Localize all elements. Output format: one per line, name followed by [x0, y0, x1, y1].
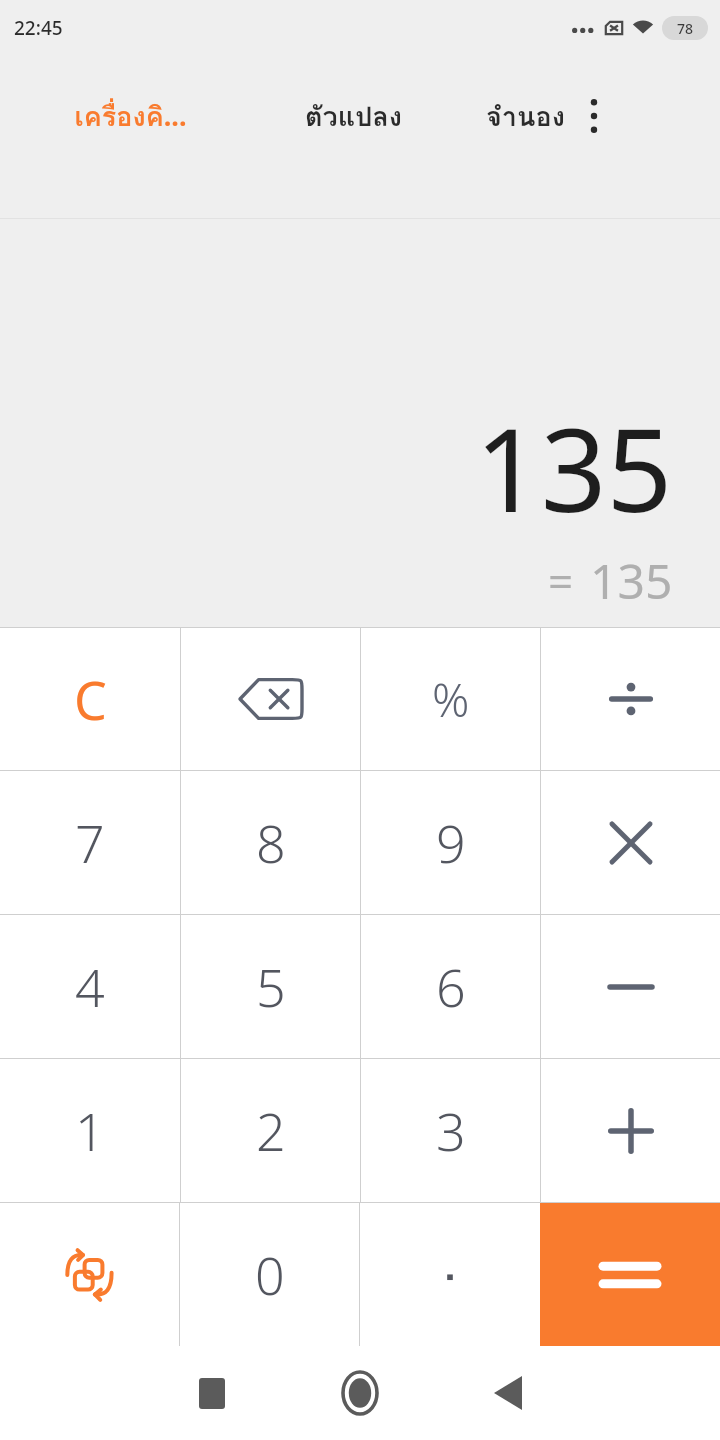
staticText: % [432, 668, 470, 731]
other: Divide [608, 676, 654, 722]
button[interactable]: Backspace [181, 628, 360, 770]
staticText: 0 [255, 1239, 285, 1310]
button[interactable]: Home [310, 1346, 410, 1440]
button[interactable]: 2 [181, 1059, 360, 1202]
button[interactable]: Multiply [541, 771, 720, 914]
staticText: 2 [256, 1095, 286, 1166]
staticText: 8 [256, 807, 286, 878]
button[interactable]: Recent apps [162, 1346, 262, 1440]
staticText: = [548, 551, 574, 611]
button[interactable]: เครื่องคิ... [0, 84, 260, 148]
staticText: 135 [590, 548, 673, 613]
button[interactable]: Divide [541, 628, 720, 770]
button[interactable]: More options [581, 94, 607, 138]
other: Backspace [240, 677, 302, 721]
staticText: ตัวแปลง [305, 95, 402, 138]
staticText: 9 [436, 807, 466, 878]
button[interactable]: 7 [0, 771, 180, 914]
button[interactable]: Equals [540, 1203, 720, 1346]
staticText: 6 [436, 951, 466, 1022]
other: Multiply [612, 824, 650, 862]
button[interactable]: Plus [541, 1059, 720, 1202]
staticText: 22:45 [14, 15, 63, 41]
staticText: 3 [436, 1095, 466, 1166]
staticText: เครื่องคิ... [74, 95, 187, 138]
staticText: จำนอง [486, 95, 565, 138]
button[interactable]: % [361, 628, 540, 770]
button[interactable]: 3 [361, 1059, 540, 1202]
other: Clear [74, 664, 107, 735]
staticText: 4 [75, 951, 105, 1022]
button[interactable]: 9 [361, 771, 540, 914]
staticText: 78 [677, 19, 694, 38]
button[interactable]: Minus [541, 915, 720, 1058]
button[interactable]: 1 [0, 1059, 180, 1202]
other: Plus [609, 1109, 653, 1153]
button[interactable]: Decimal point [360, 1203, 540, 1346]
button[interactable]: 4 [0, 915, 180, 1058]
staticText: C [74, 664, 107, 735]
button[interactable]: 5 [181, 915, 360, 1058]
button[interactable]: 0 [180, 1203, 359, 1346]
other: Minus [610, 981, 652, 993]
staticText: 135 [475, 389, 673, 546]
other: Decimal point [443, 1268, 457, 1282]
other: Convert [63, 1248, 117, 1302]
button[interactable]: Clear [0, 628, 180, 770]
button[interactable]: จำนอง [446, 84, 646, 148]
staticText: 7 [75, 807, 105, 878]
button[interactable]: 8 [181, 771, 360, 914]
staticText: 1 [75, 1095, 105, 1166]
button[interactable]: ตัวแปลง [260, 84, 446, 148]
button[interactable]: 6 [361, 915, 540, 1058]
staticText: 5 [256, 951, 286, 1022]
button[interactable]: Back [458, 1346, 558, 1440]
button[interactable]: Convert [0, 1203, 179, 1346]
